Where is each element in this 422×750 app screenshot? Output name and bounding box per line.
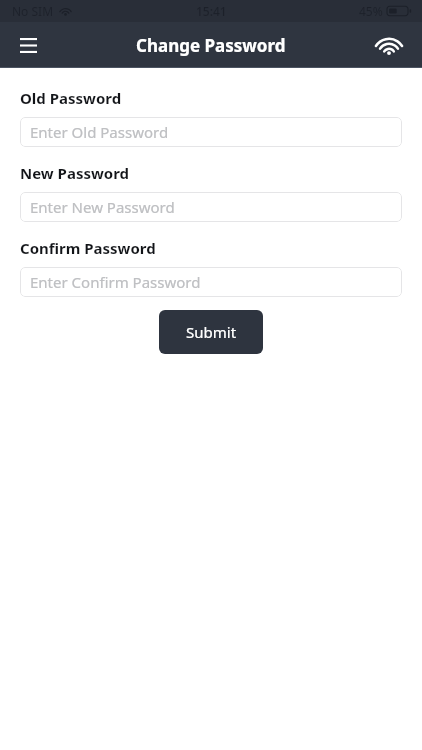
staticText: Enter New Password: [30, 197, 175, 217]
staticText: Change Password: [136, 34, 286, 57]
staticText: No SIM: [12, 3, 54, 19]
button[interactable]: Menu: [12, 29, 44, 61]
staticText: 45%: [359, 3, 383, 19]
staticText: New Password: [20, 163, 130, 183]
button[interactable]: Enter New Password: [20, 192, 402, 222]
staticText: Old Password: [20, 88, 122, 108]
button[interactable]: Submit: [159, 310, 263, 354]
staticText: Confirm Password: [20, 238, 156, 258]
staticText: Enter Confirm Password: [30, 272, 201, 292]
button[interactable]: Wifi: [372, 28, 406, 62]
button[interactable]: Enter Confirm Password: [20, 267, 402, 297]
staticText: Enter Old Password: [30, 122, 169, 142]
staticText: Submit: [186, 322, 237, 342]
staticText: 15:41: [196, 3, 227, 19]
button[interactable]: Enter Old Password: [20, 117, 402, 147]
